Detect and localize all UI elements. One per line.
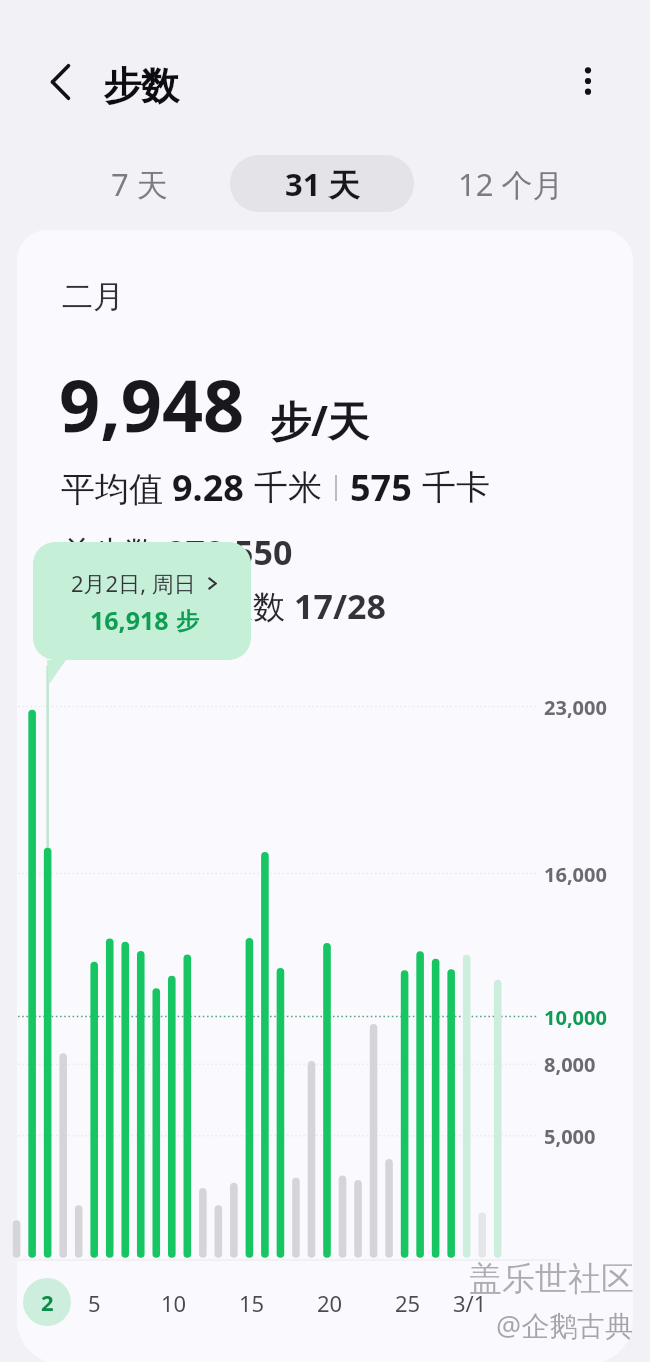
staticText: 步/天 [270,392,370,448]
button[interactable]: 12 个月 [440,155,582,212]
staticText: 平均值 [61,465,172,511]
staticText: 20 [317,1288,343,1318]
staticText: 3/1 [453,1288,487,1318]
button[interactable]: More options [564,57,612,105]
staticText: 千米 [254,466,322,509]
staticText: 2月2日, 周日 [71,568,196,598]
staticText: 步 [176,607,199,636]
staticText: 15 [239,1288,265,1318]
button[interactable]: 2 [23,1278,71,1326]
staticText: 2 [41,1287,54,1317]
staticText: 总步数 [61,530,166,574]
staticText: 16,918 [90,603,169,637]
staticText: 17/28 [294,583,386,629]
staticText: 16,000 [544,861,607,888]
staticText: 9.28 [172,463,254,512]
staticText: 5,000 [544,1123,596,1150]
staticText: 23,000 [544,694,607,721]
staticText: 千卡 [422,466,490,509]
staticText: 二月 [62,277,124,316]
staticText: 12 个月 [458,163,564,205]
staticText: 7 天 [111,163,168,205]
button[interactable]: 2月2日, 周日 [33,542,251,660]
staticText: 盖乐世社区 [469,1258,634,1300]
staticText: 25 [395,1288,421,1318]
staticText: 278,550 [166,529,293,575]
staticText: 5 [88,1288,101,1318]
staticText: 8,000 [544,1051,596,1078]
button[interactable]: Back [37,58,85,106]
staticText: @企鹅古典 [496,1306,634,1344]
staticText: 10,000 [544,1004,607,1031]
staticText: 575 [350,463,422,512]
button[interactable]: 31 天 [230,155,414,212]
staticText: 31 天 [285,163,360,205]
staticText: 10 [161,1288,187,1318]
staticText: 步数 [103,62,179,110]
button[interactable]: 7 天 [77,155,201,212]
staticText: 达成目标的天数 [61,584,294,628]
staticText: 9,948 [59,355,245,453]
